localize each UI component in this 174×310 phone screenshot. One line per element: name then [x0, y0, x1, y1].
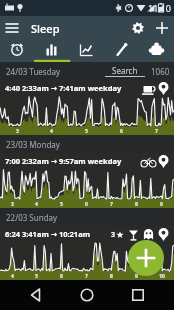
button[interactable]: 3 [0, 80, 174, 135]
staticText: 9 [135, 273, 138, 280]
button[interactable]: Search [105, 65, 145, 77]
staticText: 11:10 [148, 2, 172, 14]
staticText: 8 [135, 201, 138, 208]
button[interactable]: Trends [69, 40, 104, 62]
button[interactable]: Cup [141, 81, 156, 96]
staticText: 8 [110, 273, 113, 280]
staticText: 4 [50, 128, 53, 135]
button[interactable]: Add [150, 16, 174, 40]
staticText: 3 [111, 230, 116, 240]
staticText: 6 [120, 128, 123, 135]
staticText: Sleep [31, 21, 60, 36]
button[interactable]: Home [72, 280, 102, 310]
staticText: 4 [11, 273, 14, 280]
button[interactable]: Alarms [0, 40, 34, 62]
staticText: 24/03 Tuesday [6, 66, 61, 77]
button[interactable]: Settings [126, 16, 150, 40]
staticText: Search [112, 65, 138, 76]
staticText: 5 [35, 273, 38, 280]
staticText: 6 [85, 201, 88, 208]
staticText: 3 [11, 201, 14, 208]
button[interactable]: 22/03 Sunday [0, 208, 174, 226]
button[interactable]: Pin [156, 154, 171, 169]
button[interactable]: Ghost [141, 227, 156, 242]
staticText: 7 [85, 273, 88, 280]
button[interactable]: Pin [156, 227, 171, 242]
button[interactable]: Add-ons [139, 40, 174, 62]
button[interactable]: 24/03 Tuesday [0, 62, 174, 80]
button[interactable]: 3 [0, 153, 174, 208]
staticText: 23/03 Monday [6, 139, 60, 150]
staticText: 22/03 Sunday [6, 212, 58, 223]
staticText: 7:00 2:32am → 9:57am weekday [5, 156, 122, 166]
staticText: 6:24 3:41am → 10:21am [5, 229, 90, 239]
staticText: 5 [60, 201, 63, 208]
button[interactable]: Recent apps [123, 280, 153, 310]
button[interactable]: Add sleep record [128, 240, 164, 276]
button[interactable]: 23/03 Monday [0, 135, 174, 153]
staticText: 4 [35, 201, 38, 208]
button[interactable]: Bike [141, 154, 156, 169]
staticText: 3 [16, 128, 19, 135]
staticText: 10 [159, 273, 165, 280]
staticText: 6 [60, 273, 63, 280]
button[interactable]: Back [21, 280, 51, 310]
staticText: 4:40 2:33am → 7:41am weekday [5, 83, 122, 93]
staticText: 7 [155, 128, 158, 135]
button[interactable]: Statistics [34, 40, 69, 62]
staticText: 1060 [151, 66, 170, 77]
button[interactable]: Noise [104, 40, 139, 62]
staticText: 9 [160, 201, 163, 208]
button[interactable]: Glass [126, 227, 141, 242]
button[interactable]: Pin [156, 81, 171, 96]
button[interactable]: Open navigation drawer [0, 16, 24, 40]
button[interactable]: 4 [0, 226, 174, 280]
staticText: 7 [110, 201, 113, 208]
staticText: 5 [85, 128, 88, 135]
